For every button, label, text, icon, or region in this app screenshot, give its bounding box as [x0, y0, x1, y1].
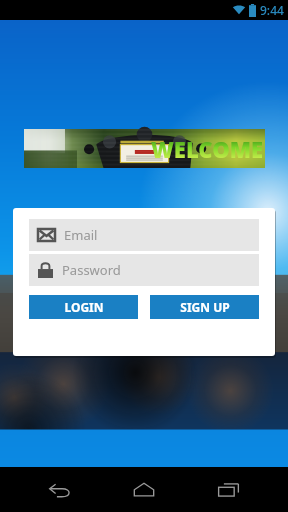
- staticText: 9:44: [260, 2, 284, 18]
- staticText: WELCOME: [151, 134, 264, 164]
- staticText: Email: [64, 226, 98, 244]
- button[interactable]: LOGIN: [29, 295, 138, 319]
- staticText: SIGN UP: [180, 299, 230, 315]
- button[interactable]: Home: [120, 467, 168, 512]
- staticText: Password: [62, 261, 121, 279]
- staticText: LOGIN: [64, 299, 104, 315]
- button[interactable]: Recent apps: [204, 467, 252, 512]
- button[interactable]: Email: [29, 219, 259, 251]
- button[interactable]: Back: [36, 467, 84, 512]
- button[interactable]: Password: [29, 254, 259, 286]
- button[interactable]: SIGN UP: [150, 295, 259, 319]
